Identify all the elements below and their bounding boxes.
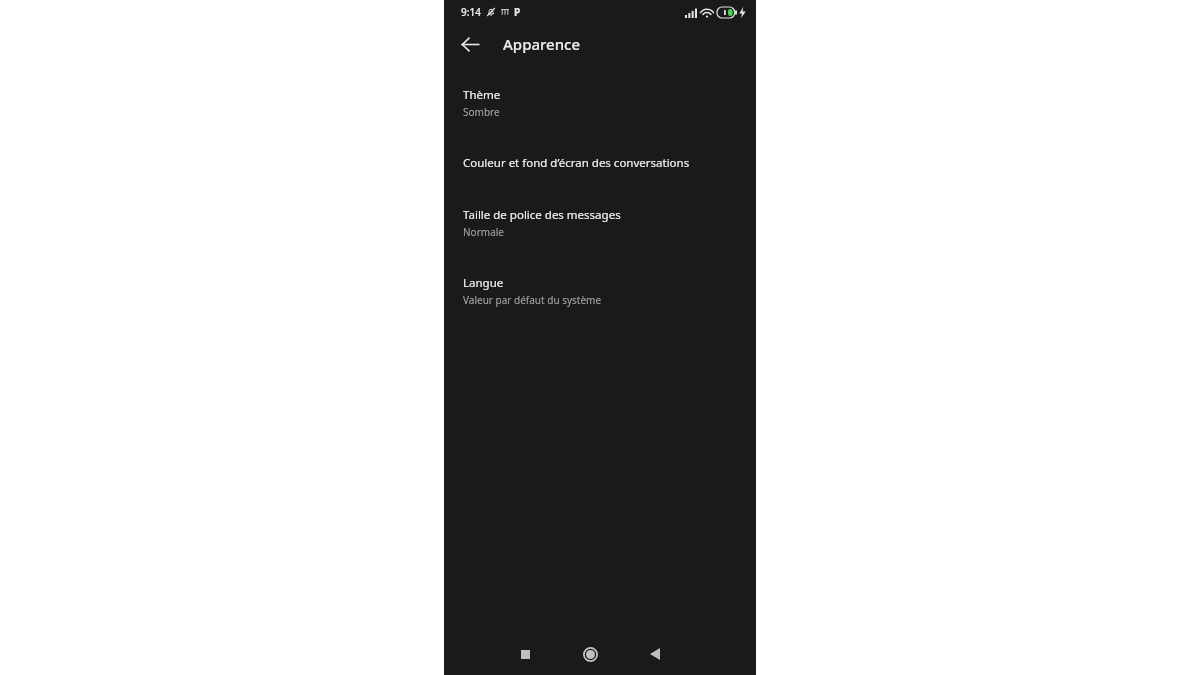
button[interactable]: Applications récentes [506,635,544,673]
staticText: Normale [463,225,504,239]
staticText: Couleur et fond d’écran des conversation… [463,155,690,171]
staticText: Sombre [463,105,500,119]
button[interactable]: Accueil [571,635,609,673]
staticText: Apparence [503,34,581,54]
staticText: Valeur par défaut du système [463,293,602,307]
button[interactable]: Langue [444,268,756,314]
staticText: Thème [463,87,501,103]
button[interactable]: Retour [636,635,674,673]
staticText: 9:14 [461,5,481,19]
staticText: Taille de police des messages [463,207,621,223]
staticText: P [514,5,521,19]
staticText: Langue [463,275,504,291]
button[interactable]: Taille de police des messages [444,200,756,246]
button[interactable]: Retour [452,26,488,62]
button[interactable]: Thème [444,80,756,126]
button[interactable]: Couleur et fond d’écran des conversation… [444,148,756,178]
